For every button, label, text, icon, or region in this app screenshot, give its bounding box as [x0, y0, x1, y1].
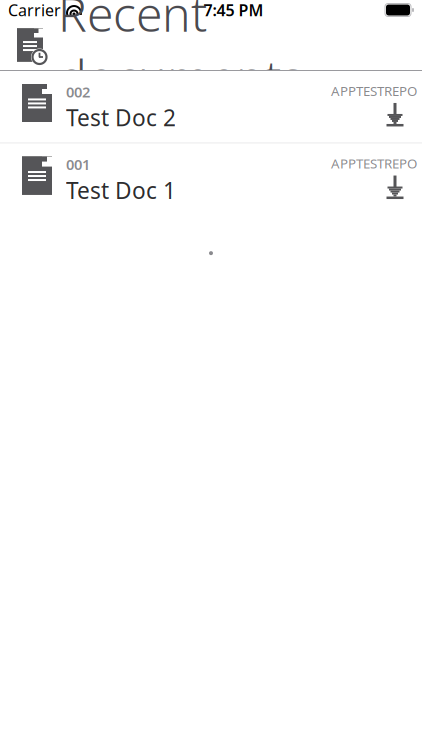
button[interactable]: 002 [0, 71, 422, 143]
staticText: APPTESTREPO [331, 155, 417, 172]
staticText: Test Doc 1 [66, 175, 176, 205]
button[interactable]: 001 [0, 144, 422, 215]
staticText: 001 [66, 155, 90, 174]
staticText: Carrier [8, 0, 61, 21]
staticText: Test Doc 2 [66, 102, 176, 133]
staticText: 7:45 PM [203, 0, 263, 21]
staticText: Recent documents [58, 0, 304, 109]
staticText: 002 [66, 82, 90, 101]
staticText: APPTESTREPO [331, 82, 417, 100]
